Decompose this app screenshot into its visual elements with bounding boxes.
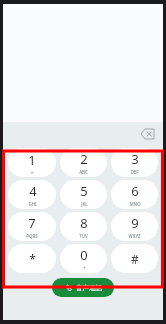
button[interactable]: 8 — [60, 212, 107, 241]
staticText: MNO — [129, 201, 141, 207]
button[interactable]: 7 — [8, 212, 56, 241]
staticText: DEF — [130, 169, 139, 175]
staticText: 0 — [80, 246, 88, 264]
staticText: PQRS — [26, 233, 38, 239]
staticText: 8 — [80, 214, 88, 232]
button[interactable]: # — [111, 244, 158, 273]
button[interactable]: 9 — [111, 212, 158, 241]
staticText: 5 — [80, 182, 88, 200]
staticText: * — [29, 251, 36, 267]
button[interactable]: 2 — [60, 148, 107, 177]
button[interactable]: 0 — [60, 244, 107, 273]
staticText: GHI — [28, 201, 37, 207]
staticText: 6 — [131, 182, 139, 200]
staticText: # — [131, 251, 139, 267]
staticText: 2 — [80, 150, 88, 168]
button[interactable]: 5 — [60, 180, 107, 209]
staticText: ∞ — [30, 170, 34, 175]
staticText: 3 — [131, 150, 139, 168]
button[interactable]: 3 — [111, 148, 158, 177]
staticText: 9 — [131, 214, 139, 232]
button[interactable]: 1 — [8, 148, 56, 177]
staticText: 7 — [28, 214, 36, 232]
staticText: + — [83, 265, 86, 271]
button[interactable]: Backspace — [137, 126, 157, 142]
staticText: 4 — [29, 182, 37, 200]
button[interactable]: 6 — [111, 180, 158, 209]
staticText: 音声通話 — [76, 284, 102, 292]
staticText: ABC — [79, 169, 88, 175]
button[interactable]: 音声通話 — [52, 278, 114, 297]
button[interactable]: 4 — [8, 180, 56, 209]
button[interactable]: * — [8, 244, 56, 273]
staticText: 1 — [28, 151, 36, 169]
staticText: TUV — [79, 233, 88, 239]
staticText: WXYZ — [128, 233, 141, 239]
staticText: JKL — [81, 201, 88, 207]
